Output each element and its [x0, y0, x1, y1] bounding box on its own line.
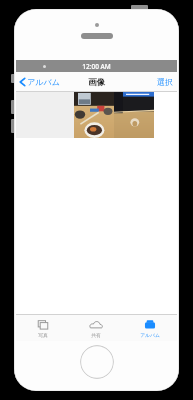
staticText: 選択 [157, 77, 173, 87]
button[interactable]: 選択 [157, 72, 173, 92]
button[interactable]: アルバム [19, 72, 60, 92]
staticText: 写真 [38, 332, 48, 338]
staticText: 12:00 AM [82, 62, 111, 71]
staticText: 共有 [91, 332, 101, 338]
button[interactable]: Home [80, 345, 114, 379]
staticText: アルバム [27, 77, 60, 87]
staticText: 画像 [88, 77, 105, 88]
other: Albums [143, 319, 157, 331]
button[interactable] [114, 92, 154, 138]
staticText: アルバム [140, 332, 160, 338]
button[interactable]: Shared [69, 315, 123, 341]
other: Shared [89, 319, 103, 331]
button[interactable]: Photos [16, 315, 69, 341]
other: Photos [36, 319, 50, 331]
button[interactable] [74, 92, 114, 138]
button[interactable]: Albums [123, 315, 177, 341]
